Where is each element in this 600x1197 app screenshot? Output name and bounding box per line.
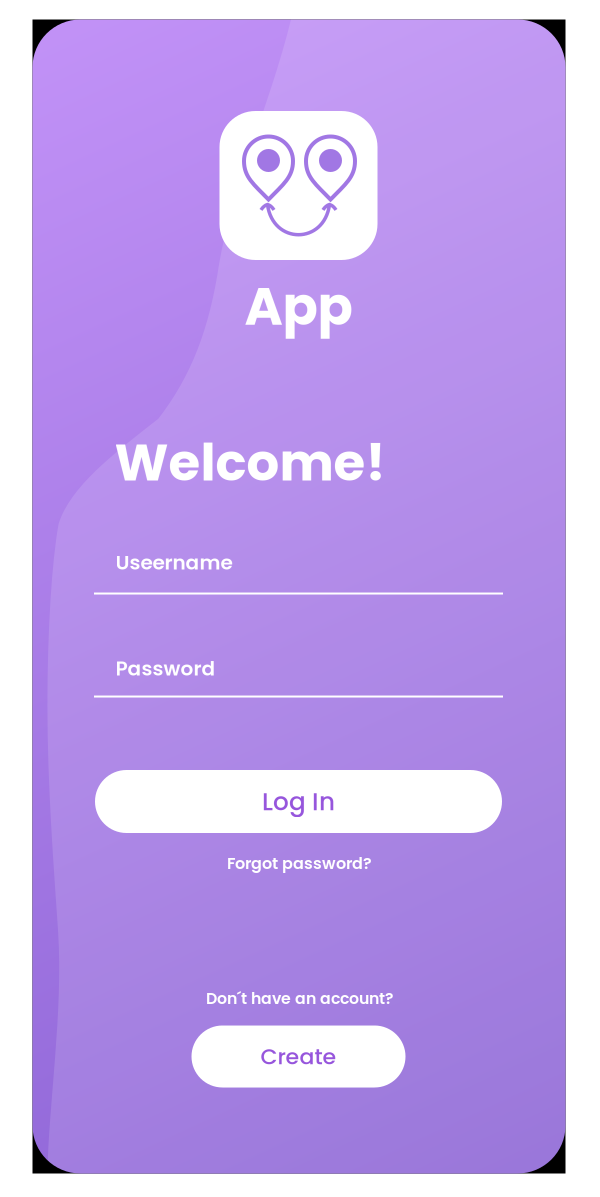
staticText: Create: [260, 1041, 336, 1072]
staticText: Useername: [115, 548, 232, 576]
button[interactable]: Create: [191, 1025, 405, 1087]
staticText: App: [244, 270, 352, 343]
staticText: Log In: [262, 784, 335, 819]
staticText: Forgot password?: [227, 852, 372, 875]
staticText: Welcome!: [114, 427, 385, 498]
button[interactable]: Log In: [95, 770, 502, 833]
button[interactable]: Forgot password?: [222, 847, 377, 880]
staticText: Don´t have an account?: [206, 987, 393, 1009]
staticText: Password: [115, 654, 215, 682]
